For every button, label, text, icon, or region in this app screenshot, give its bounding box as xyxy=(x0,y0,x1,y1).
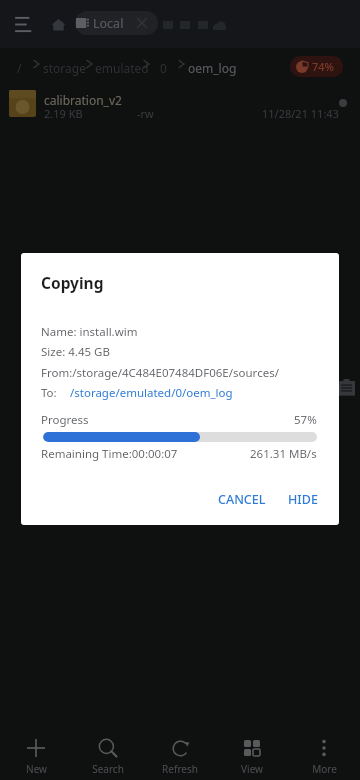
staticText: New xyxy=(26,762,47,776)
staticText: /storage/emulated/0/oem_log xyxy=(70,385,233,401)
button[interactable]: calibration_v2 xyxy=(0,90,360,136)
button[interactable]: Tab xyxy=(159,16,177,34)
staticText: 74% xyxy=(312,59,334,74)
button[interactable]: Menu xyxy=(9,11,35,37)
staticText: Search xyxy=(92,762,124,776)
staticText: 0 xyxy=(160,60,167,76)
button[interactable]: Local xyxy=(75,11,158,35)
staticText: emulated xyxy=(95,60,149,76)
staticText: HIDE xyxy=(288,491,318,508)
staticText: calibration_v2 xyxy=(44,92,122,108)
staticText: Progress xyxy=(41,412,89,428)
staticText: 11/28/21 11:43 xyxy=(262,106,339,121)
staticText: 57% xyxy=(294,412,317,428)
button[interactable]: More xyxy=(288,710,360,780)
button[interactable]: Tab xyxy=(194,16,212,34)
staticText: Name: install.wim xyxy=(41,324,138,340)
button[interactable]: HIDE xyxy=(280,485,326,514)
button[interactable]: New xyxy=(0,710,72,780)
staticText: Size: 4.45 GB xyxy=(41,344,110,360)
button[interactable]: Cloud xyxy=(210,16,228,34)
staticText: More xyxy=(312,762,337,776)
staticText: View xyxy=(241,762,263,776)
staticText: Local xyxy=(93,15,124,32)
button[interactable]: Home xyxy=(45,11,71,37)
staticText: -rw xyxy=(137,106,154,121)
staticText: From:/storage/4C484E07484DF06E/sources/ xyxy=(41,365,279,381)
staticText: Copying xyxy=(41,272,104,293)
staticText: CANCEL xyxy=(218,491,266,508)
staticText: oem_log xyxy=(188,60,237,76)
button[interactable]: View xyxy=(216,710,288,780)
button[interactable]: Tab xyxy=(176,16,194,34)
staticText: Remaining Time:00:00:07 xyxy=(41,446,178,462)
button[interactable]: 74% xyxy=(290,56,343,77)
button[interactable]: Search xyxy=(72,710,144,780)
button[interactable]: Clipboard xyxy=(338,379,355,396)
staticText: 261.31 MB/s xyxy=(250,446,317,462)
button[interactable]: Refresh xyxy=(144,710,216,780)
staticText: storage xyxy=(43,60,86,76)
button[interactable]: CANCEL xyxy=(210,485,274,514)
staticText: 2.19 KB xyxy=(44,106,83,121)
staticText: To: xyxy=(41,385,57,401)
staticText: / xyxy=(17,60,22,76)
staticText: Refresh xyxy=(162,762,198,776)
